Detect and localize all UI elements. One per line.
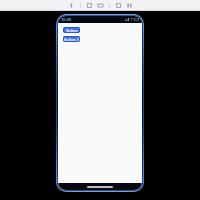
button[interactable]: Select bbox=[68, 2, 75, 9]
staticText: Button bbox=[66, 28, 78, 33]
button[interactable]: Button bbox=[63, 27, 80, 33]
button[interactable]: Settings bbox=[115, 2, 122, 9]
staticText: 10:00 bbox=[61, 17, 72, 22]
button[interactable]: Button 2 bbox=[63, 36, 80, 42]
button[interactable]: Zoom out bbox=[86, 2, 93, 9]
button[interactable]: Home gesture bbox=[87, 186, 113, 188]
button[interactable]: Layout bbox=[126, 2, 133, 9]
staticText: Button 2 bbox=[64, 37, 79, 42]
button[interactable]: Fit screen bbox=[97, 2, 104, 9]
